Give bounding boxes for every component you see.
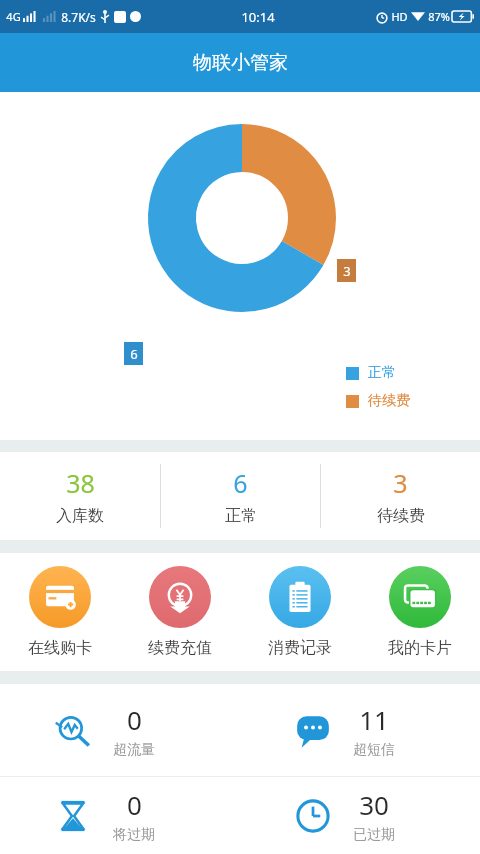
button[interactable]: 0 [0,777,240,854]
staticText: 30 [359,787,389,822]
staticText: 已过期 [353,826,395,844]
staticText: 3 [393,466,408,500]
staticText: 待续费 [368,392,410,410]
staticText: 6 [130,345,138,363]
staticText: 我的卡片 [388,638,452,658]
staticText: 超流量 [113,741,155,759]
button[interactable]: 3 [321,452,480,540]
staticText: 续费充值 [148,638,212,658]
staticText: HD [391,9,408,24]
staticText: 10:14 [241,8,275,26]
staticText: 入库数 [56,506,104,526]
staticText: 消费记录 [268,638,332,658]
staticText: 3 [343,262,351,280]
button[interactable]: 38 [0,452,160,540]
button[interactable]: 消费记录 [240,553,360,671]
staticText: 正常 [225,506,257,526]
staticText: 物联小管家 [193,51,288,75]
staticText: 87% [428,9,450,24]
staticText: 11 [359,702,389,737]
staticText: 4G [6,9,21,24]
button[interactable]: 我的卡片 [360,553,480,671]
button[interactable]: 在线购卡 [0,553,120,671]
staticText: 0 [127,702,142,737]
staticText: 0 [127,787,142,822]
staticText: 6 [233,466,248,500]
staticText: 38 [66,466,95,500]
button[interactable]: 续费充值 [120,553,240,671]
staticText: 在线购卡 [28,638,92,658]
staticText: 待续费 [377,506,425,526]
button[interactable]: 11 [240,684,480,776]
staticText: 8.7K/s [61,9,96,25]
button[interactable]: 物联小管家 [0,33,480,92]
staticText: 将过期 [113,826,155,844]
button[interactable]: 0 [0,684,240,776]
staticText: 超短信 [353,741,395,759]
staticText: 正常 [368,364,396,382]
button[interactable]: 6 [161,452,320,540]
button[interactable]: 30 [240,777,480,854]
